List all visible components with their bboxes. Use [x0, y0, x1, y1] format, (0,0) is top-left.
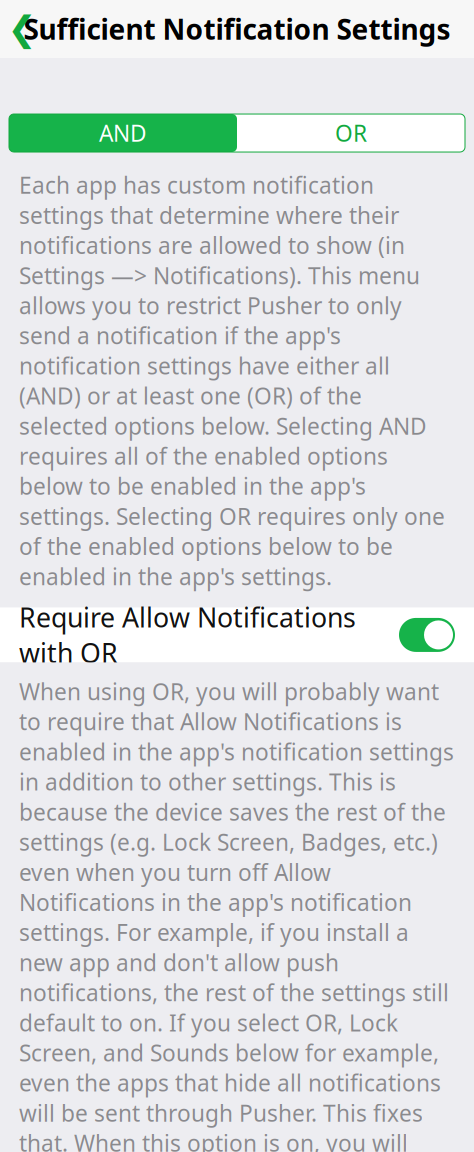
- staticText: Require Allow Notifications with OR: [19, 599, 356, 670]
- staticText: ❮: [7, 9, 36, 49]
- staticText: OR: [335, 118, 367, 148]
- button[interactable]: On: [399, 618, 455, 652]
- button[interactable]: Require Allow Notifications with OR: [0, 607, 474, 662]
- staticText: When using OR, you will probably want to…: [19, 676, 454, 1152]
- button[interactable]: AND: [9, 114, 237, 152]
- staticText: Sufficient Notification Settings: [23, 10, 450, 48]
- button[interactable]: OR: [237, 114, 465, 152]
- staticText: Each app has custom notification setting…: [19, 170, 445, 591]
- staticText: AND: [99, 118, 147, 148]
- button[interactable]: Back: [0, 7, 44, 51]
